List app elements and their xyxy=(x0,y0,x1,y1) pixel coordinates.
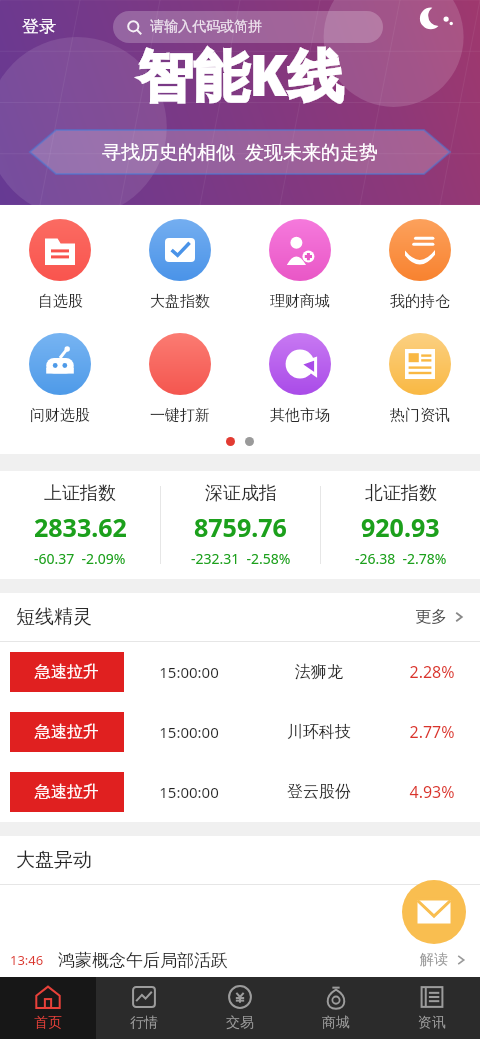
staticText: -26.38 -2.78% xyxy=(355,549,447,568)
staticText: 深证成指 xyxy=(205,482,277,505)
button[interactable]: 行情 xyxy=(96,977,192,1039)
staticText: 2.77% xyxy=(384,721,480,743)
staticText: 2833.62 xyxy=(34,510,127,544)
staticText: 上证指数 xyxy=(44,482,116,505)
staticText: 解读 xyxy=(420,951,448,969)
button[interactable]: 交易 xyxy=(192,977,288,1039)
staticText: -232.31 -2.58% xyxy=(191,549,291,568)
button[interactable]: 13:46 xyxy=(0,943,480,977)
staticText: 13:46 xyxy=(10,951,44,969)
staticText: 8759.76 xyxy=(194,510,287,544)
staticText: 川环科技 xyxy=(254,722,384,742)
button[interactable]: 请输入代码或简拼 xyxy=(127,11,383,43)
staticText: 2.28% xyxy=(384,661,480,683)
button[interactable]: 急速拉升 xyxy=(0,762,480,822)
staticText: 自选股 xyxy=(38,292,83,311)
staticText: 理财商城 xyxy=(270,292,330,311)
staticText: 15:00:00 xyxy=(124,722,254,742)
staticText: 登云股份 xyxy=(254,782,384,802)
staticText: 大盘指数 xyxy=(150,292,210,311)
button[interactable]: 大盘指数 xyxy=(120,219,240,311)
staticText: 问财选股 xyxy=(30,406,90,425)
staticText: 920.93 xyxy=(361,510,440,544)
staticText: 15:00:00 xyxy=(124,782,254,802)
button[interactable]: 急速拉升 xyxy=(0,702,480,762)
staticText: 短线精灵 xyxy=(16,605,92,629)
staticText: 热门资讯 xyxy=(390,406,450,425)
button[interactable]: 登录 xyxy=(0,0,480,205)
staticText: 4.93% xyxy=(384,781,480,803)
staticText: 急速拉升 xyxy=(35,722,99,742)
button[interactable]: 大盘异动 xyxy=(0,836,480,884)
button[interactable]: 我的持仓 xyxy=(360,219,480,311)
button[interactable]: 热门资讯 xyxy=(360,333,480,425)
staticText: 更多 xyxy=(415,607,447,627)
button[interactable]: Night mode xyxy=(425,12,457,44)
staticText: 法狮龙 xyxy=(254,662,384,682)
button[interactable]: 上证指数 xyxy=(0,471,160,579)
button[interactable]: 首页 xyxy=(0,977,96,1039)
staticText: 北证指数 xyxy=(365,482,437,505)
button[interactable]: 深证成指 xyxy=(161,471,320,579)
staticText: 鸿蒙概念午后局部活跃 xyxy=(58,950,228,971)
button[interactable]: 理财商城 xyxy=(240,219,360,311)
button[interactable]: 自选股 xyxy=(0,219,120,311)
staticText: 急速拉升 xyxy=(35,662,99,682)
button[interactable]: Messages xyxy=(402,880,466,944)
staticText: 智能K线 xyxy=(137,36,344,112)
staticText: 大盘异动 xyxy=(16,848,92,872)
staticText: -60.37 -2.09% xyxy=(34,549,126,568)
staticText: 我的持仓 xyxy=(390,292,450,311)
button[interactable]: 其他市场 xyxy=(240,333,360,425)
button[interactable]: 急速拉升 xyxy=(0,642,480,702)
button[interactable]: 商城 xyxy=(288,977,384,1039)
button[interactable]: 问财选股 xyxy=(0,333,120,425)
staticText: 请输入代码或简拼 xyxy=(150,18,262,36)
staticText: 首页 xyxy=(34,1014,62,1032)
button[interactable]: 短线精灵 xyxy=(0,593,480,641)
button[interactable]: 资讯 xyxy=(384,977,480,1039)
staticText: 商城 xyxy=(322,1014,350,1032)
button[interactable]: 北证指数 xyxy=(321,471,480,579)
staticText: 急速拉升 xyxy=(35,782,99,802)
staticText: 15:00:00 xyxy=(124,662,254,682)
staticText: 资讯 xyxy=(418,1014,446,1032)
staticText: 行情 xyxy=(130,1014,158,1032)
staticText: 一键打新 xyxy=(150,406,210,425)
staticText: 交易 xyxy=(226,1014,254,1032)
staticText: 登录 xyxy=(22,16,56,37)
button[interactable]: 一键打新 xyxy=(120,333,240,425)
staticText: 寻找历史的相似 发现未来的走势 xyxy=(102,139,378,165)
staticText: 其他市场 xyxy=(270,406,330,425)
